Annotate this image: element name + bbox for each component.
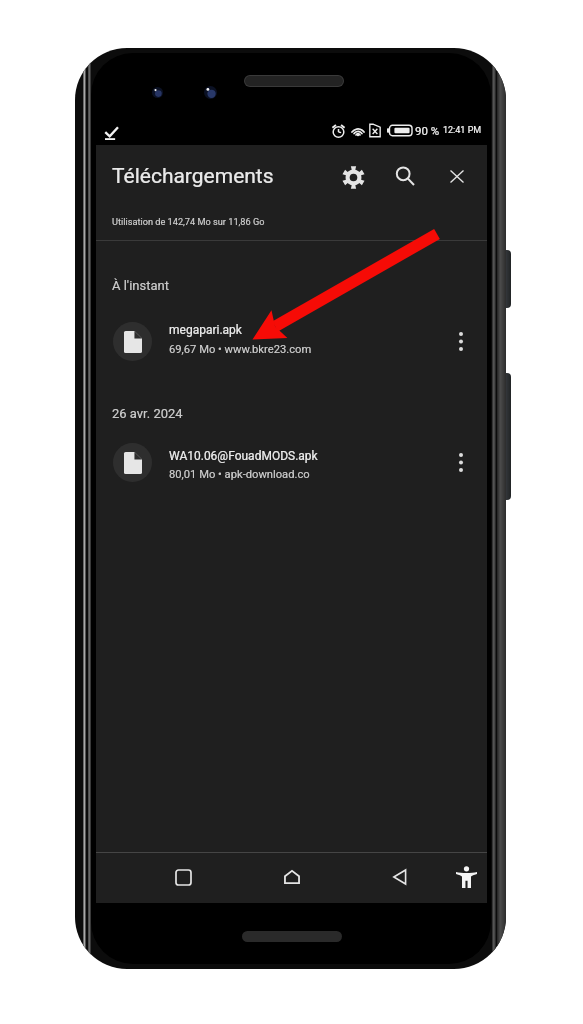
staticText: WA10.06@FouadMODS.apk — [169, 449, 318, 463]
button[interactable]: Back — [376, 853, 424, 901]
button[interactable] — [96, 430, 487, 494]
staticText: 90 % — [415, 124, 440, 137]
button[interactable]: More options — [440, 320, 482, 362]
button[interactable] — [96, 309, 487, 373]
staticText: 26 avr. 2024 — [112, 406, 183, 421]
staticText: À l'instant — [112, 278, 169, 293]
staticText: 69,67 Mo • www.bkre23.com — [169, 343, 312, 356]
staticText: 12:41 PM — [443, 125, 482, 136]
staticText: Utilisation de 142,74 Mo sur 11,86 Go — [112, 216, 265, 227]
staticText: Téléchargements — [112, 164, 274, 189]
button[interactable]: Accessibility — [442, 853, 487, 901]
button[interactable]: More options — [440, 441, 482, 483]
button[interactable]: Recent apps — [159, 853, 207, 901]
staticText: megapari.apk — [169, 323, 242, 337]
button[interactable]: Home — [268, 853, 316, 901]
button[interactable]: Close — [435, 154, 479, 198]
button[interactable]: Settings — [331, 155, 375, 199]
button[interactable]: Search — [383, 154, 427, 198]
staticText: 80,01 Mo • apk-download.co — [169, 468, 310, 481]
